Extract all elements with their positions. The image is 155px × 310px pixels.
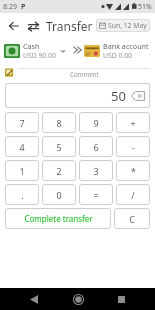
staticText: . [21,189,24,201]
button[interactable]: * [116,160,150,181]
staticText: USD 0.00 [103,51,132,60]
button[interactable]: / [116,184,150,205]
other: Note [5,68,14,77]
staticText: Transfer [46,18,93,34]
button[interactable]: Recents [111,289,131,309]
staticText: 8 [56,117,62,129]
button[interactable]: Home [68,289,88,309]
staticText: Complete transfer [24,213,93,224]
staticText: C [129,213,135,225]
button[interactable]: 9 [79,112,113,133]
staticText: 3 [93,165,99,177]
button[interactable]: Complete transfer [5,208,111,229]
button[interactable]: 0 [42,184,76,205]
staticText: USD 90.00 [23,51,56,60]
staticText: * [131,165,136,177]
button[interactable]: . [5,184,39,205]
staticText: 5 [56,141,62,153]
button[interactable]: 7 [5,112,39,133]
staticText: 51% [138,2,152,12]
button[interactable]: 8 [42,112,76,133]
staticText: 6 [93,141,99,153]
staticText: + [130,117,136,129]
staticText: 8:29 [3,2,17,12]
button[interactable]: Cash [4,41,71,60]
button[interactable]: 50 [5,83,150,108]
staticText: Sun, 12 May [108,21,147,30]
staticText: 2 [56,165,62,177]
staticText: 1 [19,165,25,177]
staticText: = [93,189,99,201]
button[interactable]: 1 [5,160,39,181]
button[interactable]: = [79,184,113,205]
button[interactable]: Back [5,17,22,34]
staticText: 9 [93,117,99,129]
staticText: / [131,189,135,201]
staticText: Bank account [103,41,149,51]
button[interactable]: Bank account [84,41,151,60]
other: Transfer type [26,19,40,33]
staticText: P [21,2,26,12]
staticText: Comment [70,70,99,78]
button[interactable]: Sun, 12 May [96,19,150,32]
button[interactable]: Backspace [131,91,145,101]
staticText: 50 [111,87,126,105]
button[interactable]: + [116,112,150,133]
staticText: 4 [19,141,25,153]
button[interactable]: 4 [5,136,39,157]
staticText: 7 [19,117,25,129]
button[interactable]: 2 [42,160,76,181]
staticText: - [132,141,135,153]
button[interactable]: Comment [18,68,150,78]
staticText: 0 [56,189,62,201]
button[interactable]: Back [24,289,44,309]
button[interactable]: 5 [42,136,76,157]
button[interactable]: - [116,136,150,157]
staticText: Cash [23,41,40,51]
button[interactable]: 6 [79,136,113,157]
button[interactable]: C [114,208,150,229]
button[interactable]: 3 [79,160,113,181]
